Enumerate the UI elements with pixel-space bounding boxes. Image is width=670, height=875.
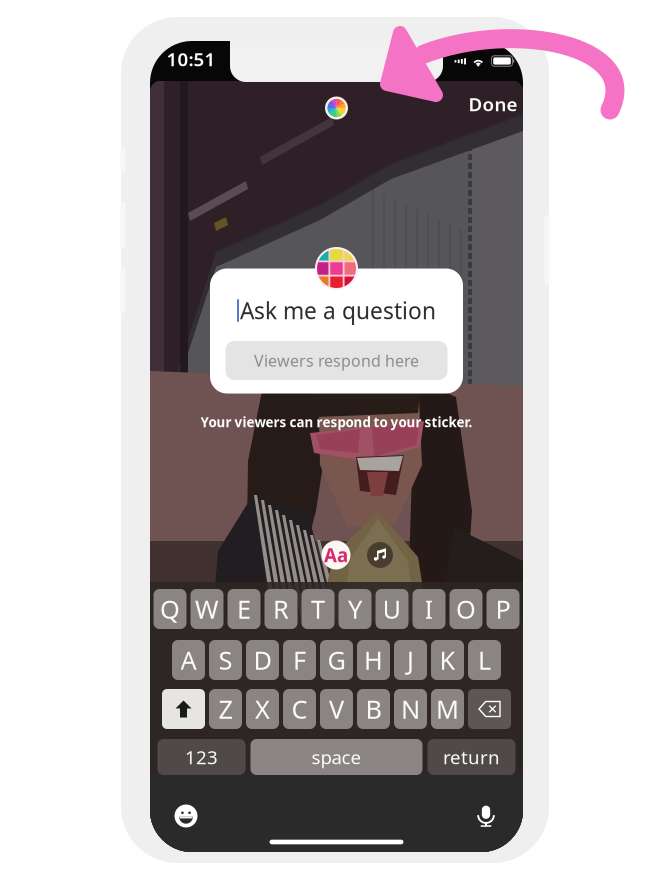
button[interactable]: Q	[153, 589, 186, 629]
button[interactable]: Z	[209, 689, 242, 729]
staticText: O	[456, 592, 476, 626]
staticText: V	[329, 692, 344, 726]
staticText: return	[443, 745, 500, 769]
staticText: 10:51	[166, 47, 215, 71]
button[interactable]: W	[190, 589, 223, 629]
staticText: Ask me a question	[240, 295, 436, 325]
staticText: M	[436, 692, 459, 726]
button[interactable]: space	[250, 739, 422, 775]
button[interactable]: A	[172, 640, 205, 680]
staticText: R	[273, 592, 289, 626]
staticText: W	[195, 592, 219, 626]
staticText: H	[364, 643, 383, 677]
staticText: T	[311, 592, 325, 626]
staticText: Done	[468, 92, 517, 116]
button[interactable]: R	[264, 589, 297, 629]
button[interactable]: U	[375, 589, 408, 629]
button[interactable]: T	[301, 589, 334, 629]
staticText: C	[291, 692, 307, 726]
staticText: Z	[218, 692, 232, 726]
button[interactable]: C	[283, 689, 316, 729]
staticText: P	[495, 592, 510, 626]
staticText: Q	[160, 592, 180, 626]
button[interactable]: B	[357, 689, 390, 729]
button[interactable]: Music	[367, 542, 393, 568]
button[interactable]: O	[449, 589, 482, 629]
staticText: Viewers respond here	[254, 350, 419, 371]
button[interactable]: Y	[338, 589, 371, 629]
button[interactable]: S	[209, 640, 242, 680]
button[interactable]: X	[246, 689, 279, 729]
button[interactable]: N	[394, 689, 427, 729]
staticText: D	[253, 643, 271, 677]
staticText: S	[218, 643, 232, 677]
staticText: E	[237, 592, 251, 626]
button[interactable]: Dictation	[467, 797, 505, 835]
staticText: L	[478, 643, 491, 677]
staticText: Your viewers can respond to your sticker…	[200, 413, 472, 431]
staticText: Aa	[324, 543, 348, 567]
staticText: U	[382, 592, 401, 626]
staticText: 123	[185, 745, 218, 769]
staticText: F	[293, 643, 306, 677]
button[interactable]: Done	[465, 91, 521, 117]
button[interactable]: G	[320, 640, 353, 680]
button[interactable]: Delete	[468, 689, 511, 729]
button[interactable]: L	[468, 640, 501, 680]
staticText: B	[365, 692, 381, 726]
staticText: Y	[348, 592, 362, 626]
staticText: N	[401, 692, 420, 726]
button[interactable]: D	[246, 640, 279, 680]
staticText: K	[439, 643, 455, 677]
button[interactable]: P	[486, 589, 519, 629]
button[interactable]: Aa	[321, 540, 350, 569]
staticText: A	[180, 643, 196, 677]
staticText: I	[424, 592, 433, 626]
button[interactable]: H	[357, 640, 390, 680]
button[interactable]: I	[412, 589, 445, 629]
button[interactable]: F	[283, 640, 316, 680]
button[interactable]: return	[427, 739, 515, 775]
button[interactable]: E	[227, 589, 260, 629]
button[interactable]: M	[431, 689, 464, 729]
staticText: G	[327, 643, 345, 677]
staticText: J	[407, 643, 414, 677]
staticText: X	[255, 692, 270, 726]
button[interactable]: V	[320, 689, 353, 729]
button[interactable]: J	[394, 640, 427, 680]
button[interactable]: Emoji	[167, 797, 205, 835]
staticText: space	[311, 745, 361, 769]
button[interactable]: 123	[157, 739, 245, 775]
button[interactable]: K	[431, 640, 464, 680]
button[interactable]: Shift	[162, 689, 205, 729]
